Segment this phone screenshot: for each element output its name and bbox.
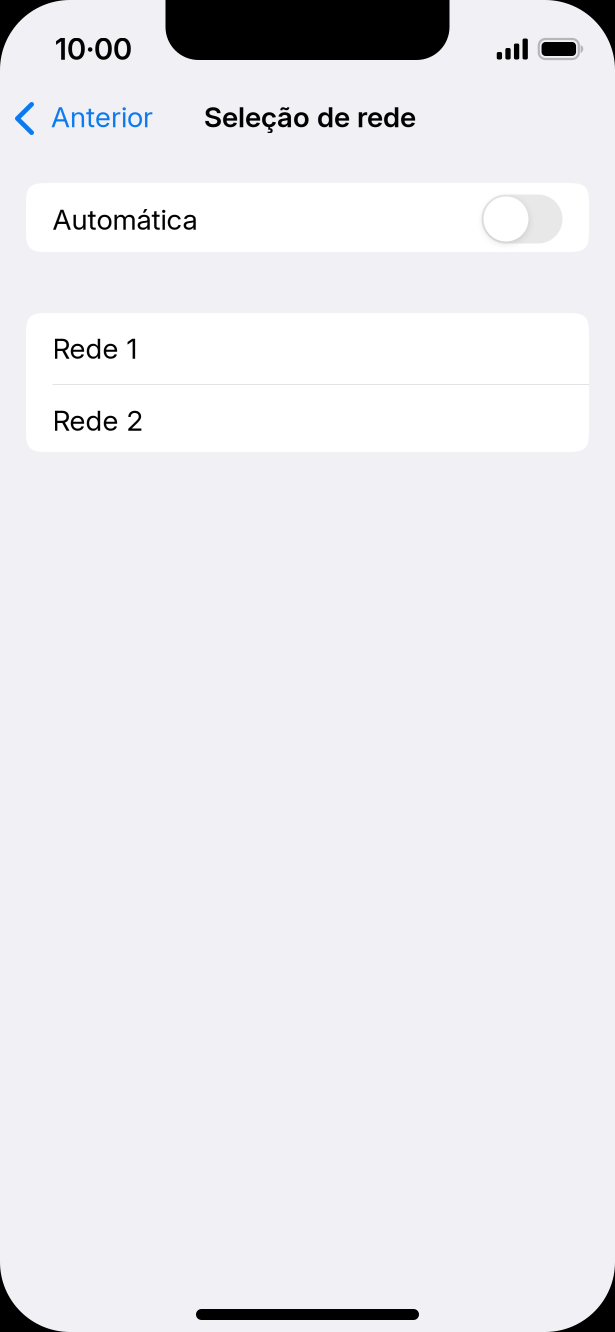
button[interactable]: Rede 2 [26, 385, 589, 452]
staticText: Rede 2 [52, 404, 143, 437]
staticText: 10·00 [55, 31, 132, 67]
staticText: Automática [52, 203, 197, 236]
staticText: Rede 1 [52, 332, 137, 365]
staticText: Anterior [51, 100, 153, 134]
button[interactable]: Anterior [0, 88, 200, 150]
button[interactable]: Rede 1 [26, 313, 589, 384]
staticText: Seleção de rede [204, 100, 416, 134]
button[interactable]: Automática [481, 191, 562, 243]
